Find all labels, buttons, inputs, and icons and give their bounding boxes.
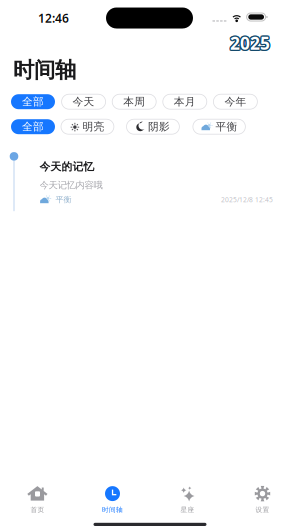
staticText: 2025: [230, 30, 270, 53]
button[interactable]: 首页: [0, 486, 75, 514]
button[interactable]: 今年: [213, 94, 257, 109]
staticText: 本月: [174, 95, 196, 108]
staticText: 时间轴: [13, 57, 76, 83]
staticText: 2025: [231, 32, 271, 55]
button[interactable]: 全部: [11, 94, 55, 109]
staticText: 全部: [22, 95, 44, 108]
staticText: 平衡: [215, 120, 237, 133]
staticText: 时间轴: [102, 506, 123, 514]
button[interactable]: 本周: [112, 94, 156, 109]
staticText: 2025: [231, 31, 271, 54]
button[interactable]: 明亮: [61, 119, 114, 134]
staticText: 2025: [229, 31, 269, 54]
staticText: 星座: [180, 506, 194, 514]
staticText: 今年: [224, 95, 246, 108]
staticText: 2025: [230, 33, 270, 56]
staticText: 2025: [229, 31, 269, 54]
staticText: 本周: [123, 95, 145, 108]
button[interactable]: 设置: [225, 486, 300, 514]
staticText: 2025: [231, 31, 271, 54]
button[interactable]: 本月: [163, 94, 207, 109]
staticText: 阴影: [148, 120, 170, 133]
staticText: 设置: [255, 506, 269, 514]
staticText: 全部: [22, 120, 44, 133]
button[interactable]: 阴影: [126, 119, 179, 134]
staticText: 2025: [229, 32, 269, 55]
button[interactable]: 时间轴: [75, 486, 150, 514]
staticText: 2025/12/8 12:45: [221, 195, 273, 204]
staticText: 今天记忆内容哦: [39, 179, 102, 191]
staticText: 平衡: [55, 195, 71, 205]
button[interactable]: 全部: [11, 119, 55, 134]
button[interactable]: 平衡: [193, 119, 245, 134]
staticText: 明亮: [82, 120, 104, 133]
staticText: 首页: [30, 506, 44, 514]
staticText: 12:46: [38, 10, 69, 26]
staticText: 今天的记忆: [39, 160, 94, 173]
staticText: 今天: [73, 95, 95, 108]
staticText: 2025: [230, 31, 270, 54]
button[interactable]: 星座: [150, 486, 225, 514]
button[interactable]: 今天: [62, 94, 106, 109]
